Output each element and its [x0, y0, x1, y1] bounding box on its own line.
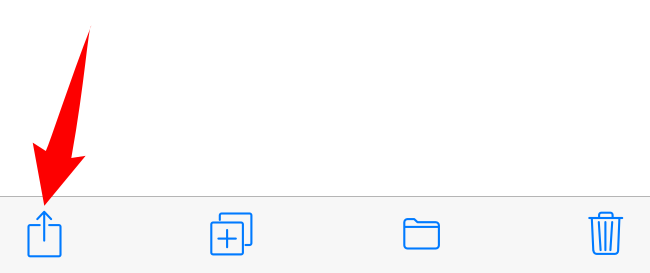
button[interactable]: Delete	[487, 197, 650, 273]
button[interactable]: Move to Folder	[325, 197, 487, 273]
button[interactable]: Duplicate	[162, 197, 325, 273]
button[interactable]: Share	[0, 197, 162, 273]
